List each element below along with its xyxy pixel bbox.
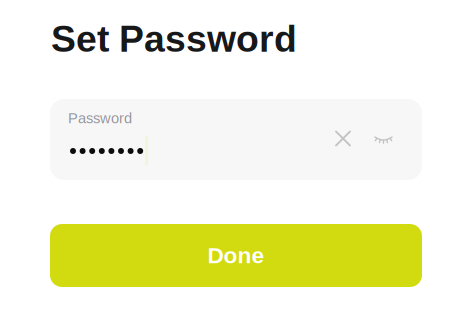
button[interactable]: Done	[50, 224, 422, 287]
staticText: Password	[68, 110, 132, 126]
button[interactable]: Show password	[367, 129, 400, 148]
staticText: Set Password	[51, 18, 297, 60]
staticText: Done	[207, 243, 264, 268]
button[interactable]: Clear password	[328, 123, 358, 153]
